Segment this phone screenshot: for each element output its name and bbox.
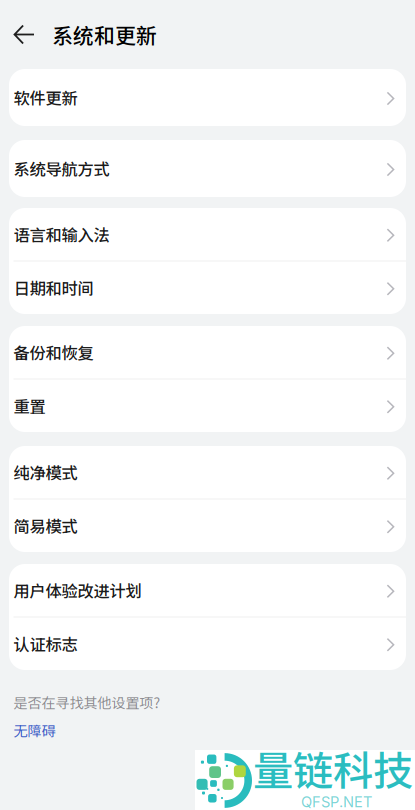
button[interactable]: 系统导航方式 — [9, 140, 406, 197]
staticText: 认证标志 — [13, 632, 77, 656]
staticText: 无障碍 — [13, 720, 55, 740]
button[interactable]: 日期和时间 — [9, 261, 406, 314]
staticText: 重置 — [13, 394, 45, 418]
staticText: 简易模式 — [13, 514, 77, 538]
button[interactable]: 无障碍 — [13, 720, 55, 740]
button[interactable]: 用户体验改进计划 — [9, 564, 406, 616]
staticText: 系统和更新 — [52, 19, 157, 49]
staticText: 量链科技 — [253, 739, 413, 797]
staticText: 用户体验改进计划 — [13, 578, 141, 602]
button[interactable]: 重置 — [9, 379, 406, 432]
staticText: 系统导航方式 — [13, 157, 109, 180]
button[interactable]: 软件更新 — [9, 69, 406, 126]
staticText: 软件更新 — [13, 86, 77, 109]
staticText: QFSP.NET — [301, 793, 372, 810]
staticText: 语言和输入法 — [13, 222, 109, 246]
button[interactable]: 认证标志 — [9, 617, 406, 670]
staticText: 日期和时间 — [13, 276, 93, 300]
staticText: 备份和恢复 — [13, 340, 93, 364]
staticText: 是否在寻找其他设置项? — [13, 692, 160, 712]
button[interactable]: 简易模式 — [9, 499, 406, 552]
button[interactable]: 备份和恢复 — [9, 326, 406, 378]
button[interactable]: 语言和输入法 — [9, 208, 406, 260]
button[interactable]: Back — [0, 12, 52, 56]
staticText: 纯净模式 — [13, 460, 77, 484]
button[interactable]: 纯净模式 — [9, 446, 406, 498]
